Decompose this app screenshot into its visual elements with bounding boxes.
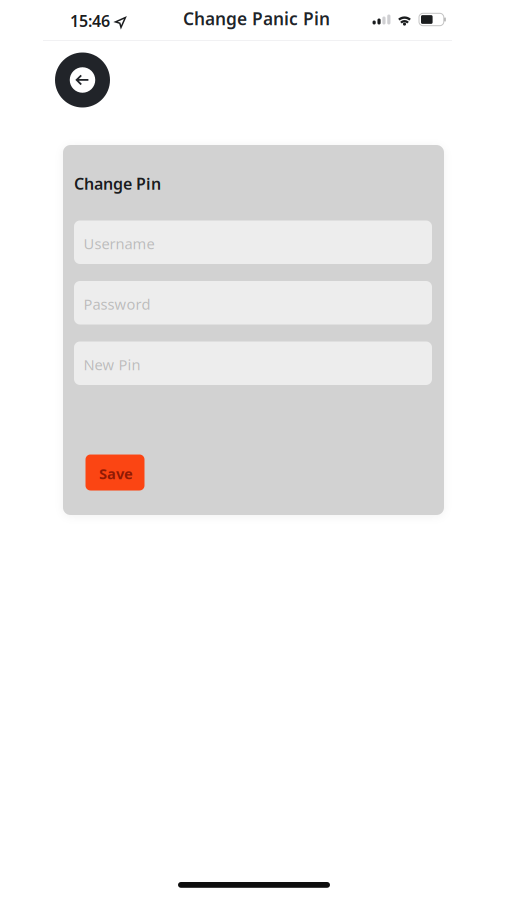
button[interactable]: Username	[74, 220, 432, 264]
button[interactable]: Save	[85, 454, 144, 490]
staticText: Change Panic Pin	[183, 7, 330, 30]
staticText: Password	[83, 294, 150, 314]
staticText: Save	[99, 464, 133, 483]
staticText: Change Pin	[74, 173, 161, 194]
staticText: 15:46	[70, 10, 110, 31]
button[interactable]: New Pin	[74, 341, 432, 385]
button[interactable]: Back	[55, 52, 110, 107]
staticText: Username	[83, 234, 154, 253]
button[interactable]: Password	[74, 281, 432, 324]
staticText: New Pin	[83, 355, 140, 374]
